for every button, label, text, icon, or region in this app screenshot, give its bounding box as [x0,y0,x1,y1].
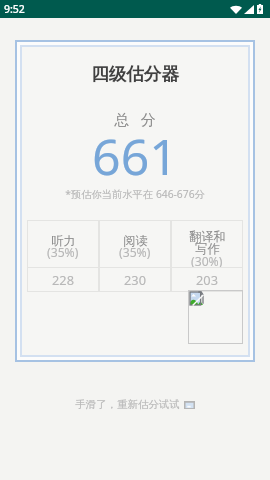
button[interactable]: 听力 [27,220,99,268]
staticText: (30%) [191,253,223,270]
staticText: (35%) [47,244,79,261]
button[interactable]: 228 [27,267,99,292]
staticText: 9:52 [4,2,25,16]
staticText: 661 [20,122,250,190]
other: Broken image [190,292,203,305]
button[interactable]: 203 [171,267,243,292]
staticText: *预估你当前水平在 646-676分 [20,187,250,201]
other: Retry [184,401,195,409]
staticText: 230 [124,271,146,288]
staticText: 手滑了，重新估分试试 [75,398,180,411]
staticText: 阅读 [123,233,148,248]
staticText: 总 分 [20,109,250,129]
button[interactable]: 阅读 [99,220,171,268]
staticText: 翻译和 写作 [189,229,226,257]
button[interactable]: 手滑了，重新估分试试 [0,398,270,411]
button[interactable]: 翻译和 写作 [171,220,243,268]
staticText: 228 [52,271,74,288]
button[interactable]: 230 [99,267,171,292]
staticText: 听力 [51,233,76,248]
staticText: 203 [196,271,218,288]
staticText: (35%) [119,244,151,261]
staticText: 四级估分器 [20,63,250,85]
